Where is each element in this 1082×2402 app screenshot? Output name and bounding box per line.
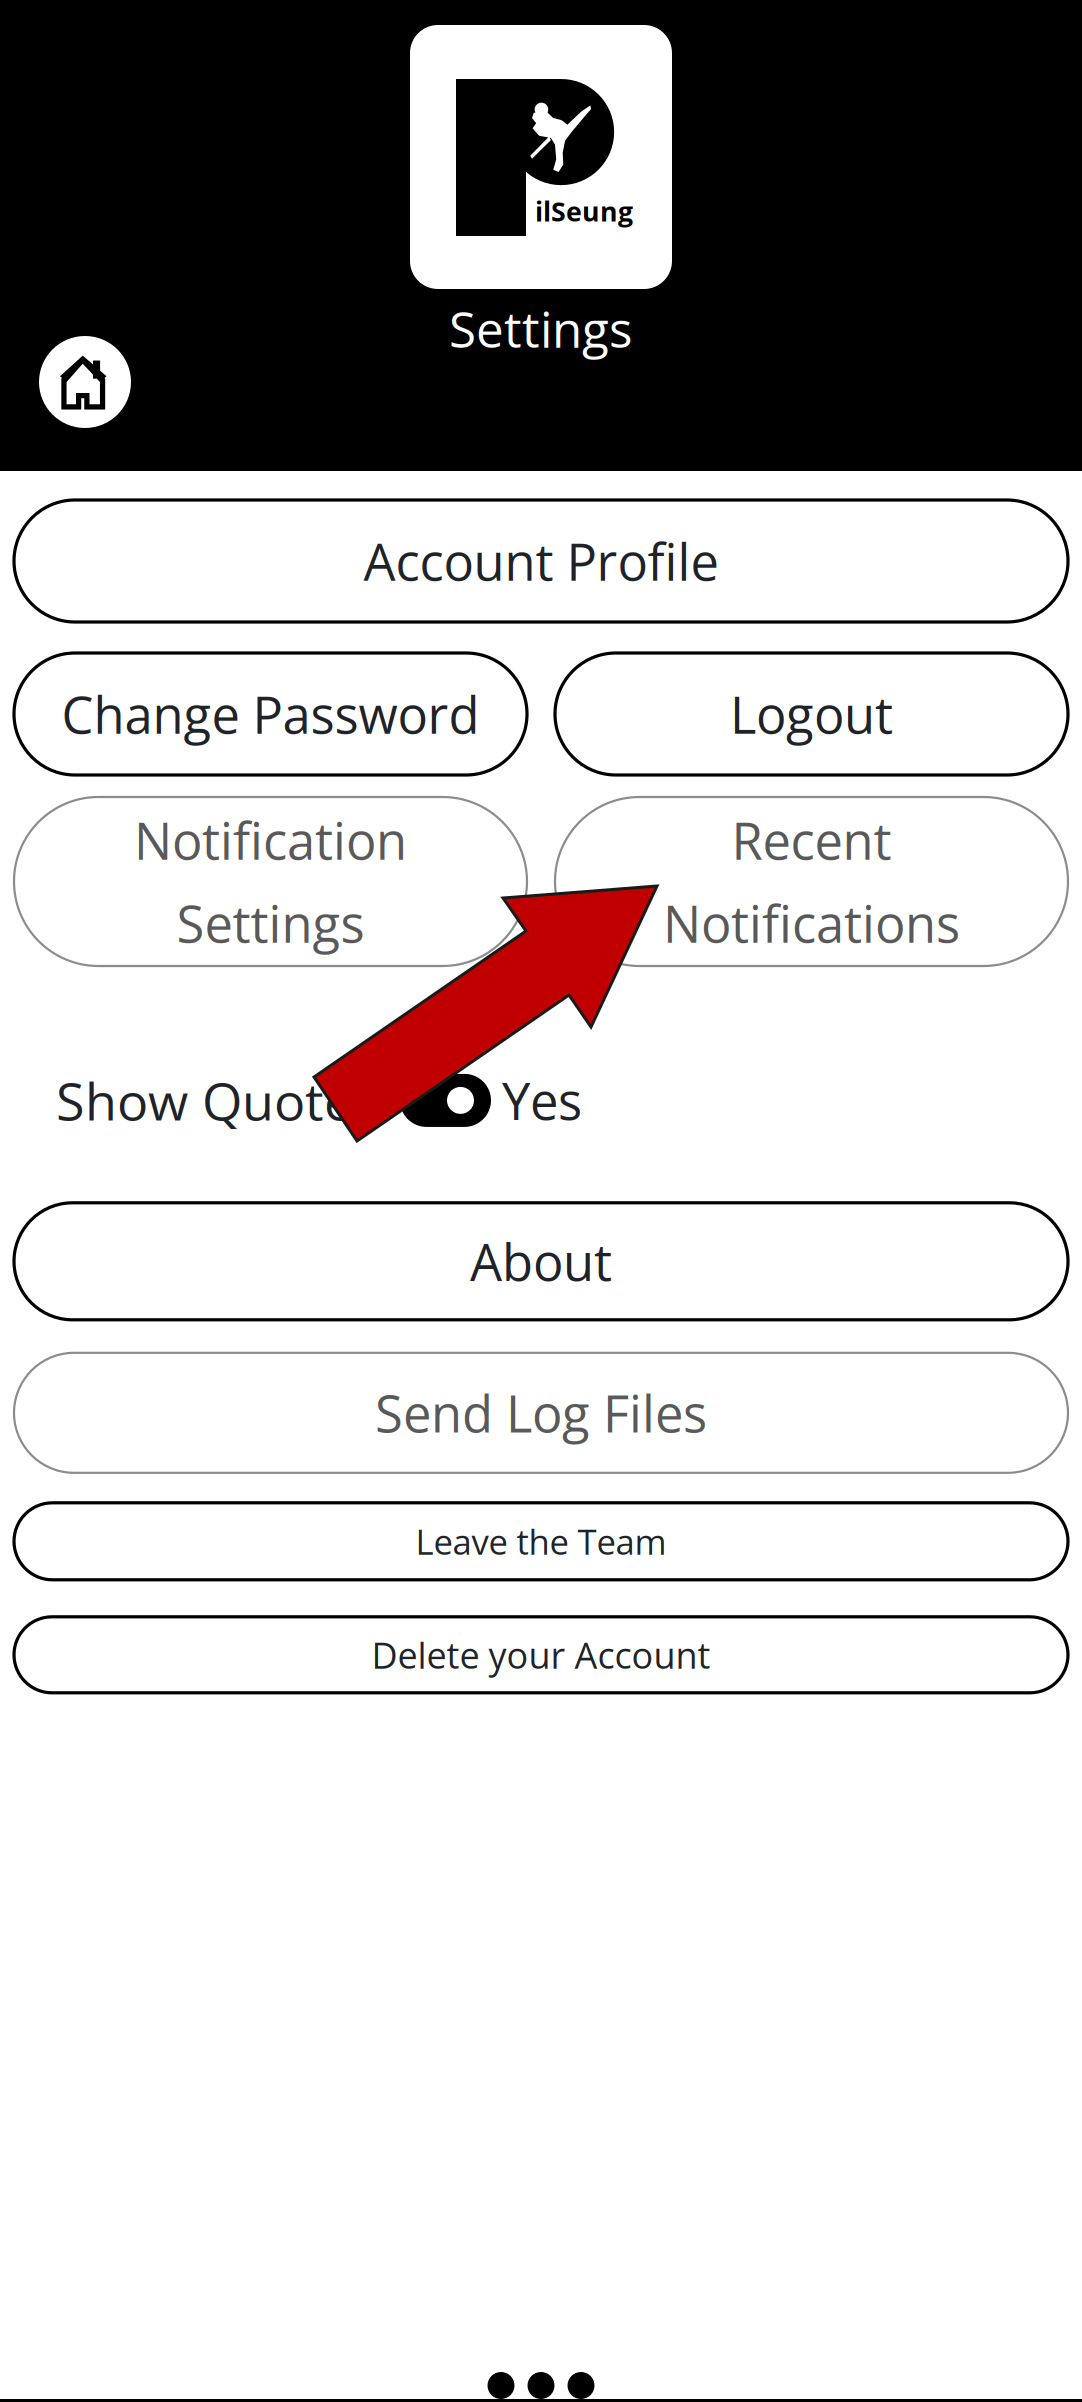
staticText: About bbox=[470, 1227, 612, 1296]
staticText: Notifications bbox=[663, 888, 960, 957]
button[interactable]: About bbox=[14, 1203, 1068, 1320]
staticText: Settings bbox=[176, 888, 364, 957]
staticText: Notification bbox=[134, 805, 407, 874]
button[interactable]: Show Quotes toggle bbox=[400, 1074, 491, 1127]
staticText: ilSeung bbox=[535, 193, 633, 229]
button[interactable]: Home bbox=[39, 336, 131, 428]
button[interactable]: Leave the Team bbox=[14, 1503, 1068, 1580]
staticText: Send Log Files bbox=[375, 1378, 707, 1447]
staticText: Change Password bbox=[61, 679, 479, 748]
button[interactable]: Send Log Files bbox=[14, 1353, 1068, 1473]
staticText: Logout bbox=[730, 679, 893, 748]
button[interactable]: Account Profile bbox=[14, 500, 1068, 622]
staticText: Leave the Team bbox=[415, 1518, 666, 1565]
staticText: Delete your Account bbox=[371, 1630, 710, 1679]
button[interactable]: Logout bbox=[555, 653, 1068, 775]
staticText: Show Quotes bbox=[56, 1065, 378, 1136]
button[interactable]: Notification bbox=[14, 797, 527, 966]
staticText: Recent bbox=[731, 805, 891, 874]
button[interactable]: Recent bbox=[555, 797, 1068, 966]
button[interactable]: Change Password bbox=[14, 653, 527, 775]
button[interactable]: Delete your Account bbox=[14, 1617, 1068, 1693]
staticText: Settings bbox=[449, 295, 633, 362]
staticText: Account Profile bbox=[363, 526, 718, 595]
staticText: Yes bbox=[502, 1066, 582, 1135]
